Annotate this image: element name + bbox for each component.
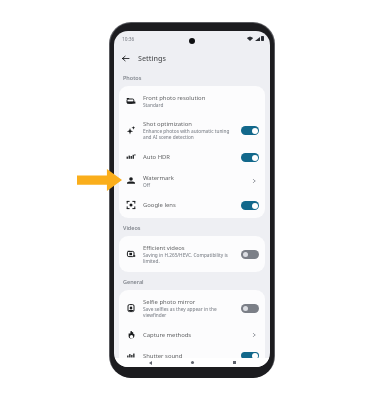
button[interactable]: Recent apps [229,358,239,367]
staticText: Standard [143,102,164,108]
button[interactable]: Toggle off [241,304,259,313]
button[interactable]: Selfie photo mirror [119,292,265,324]
staticText: Shutter sound [143,352,183,359]
button[interactable]: Google lens [119,194,265,216]
button[interactable]: Toggle on [241,352,259,359]
button[interactable]: Toggle off [241,250,259,259]
button[interactable]: Efficient videos [119,238,265,270]
button[interactable]: Back [118,51,132,65]
staticText: Settings [138,53,166,63]
button[interactable]: Toggle on [241,126,259,135]
button[interactable]: Toggle on [241,153,259,162]
button[interactable]: Capture methods [119,324,265,346]
button[interactable]: Open [248,176,259,186]
button[interactable]: Shot optimization [119,114,265,146]
staticText: Off [143,182,150,188]
staticText: General [123,278,144,285]
staticText: Shot optimization [143,120,192,128]
staticText: 10:36 [122,36,135,43]
button[interactable]: Home [187,358,197,367]
button[interactable]: Open [248,330,259,340]
button[interactable]: Front photo resolution [119,88,265,114]
staticText: Photos [123,74,142,81]
staticText: Videos [123,224,141,231]
button[interactable]: Shutter sound [119,346,265,365]
button[interactable]: Toggle on [241,201,259,210]
staticText: Saving in H.265/HEVC. Compatibility is l… [143,252,228,264]
button[interactable]: Auto HDR [119,146,265,168]
staticText: Save selfies as they appear in the viewf… [143,306,217,318]
button[interactable]: Watermark [119,168,265,194]
staticText: Google lens [143,201,176,209]
staticText: Capture methods [143,331,192,339]
staticText: Efficient videos [143,244,185,252]
staticText: Auto HDR [143,153,170,161]
staticText: Enhance photos with automatic tuning and… [143,128,230,140]
staticText: Watermark [143,174,174,182]
staticText: Front photo resolution [143,94,206,102]
button[interactable]: Back [145,358,155,367]
staticText: Selfie photo mirror [143,298,196,306]
